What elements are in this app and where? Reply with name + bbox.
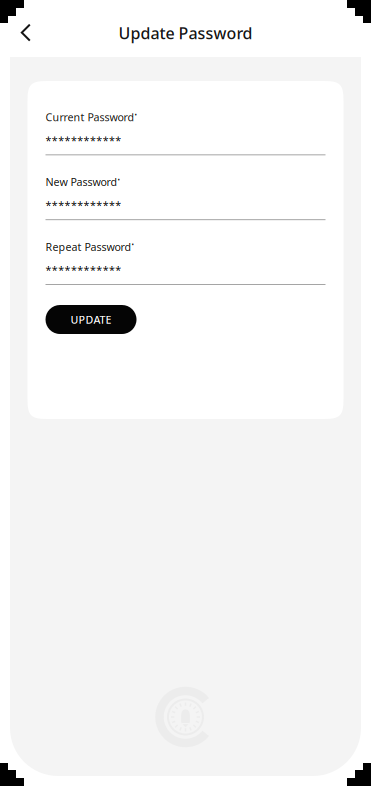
staticText: Current Password•	[45, 110, 137, 124]
button[interactable]: Back	[6, 13, 46, 53]
staticText: ************	[45, 263, 121, 277]
staticText: New Password•	[45, 175, 120, 189]
staticText: UPDATE	[70, 312, 111, 327]
button[interactable]: UPDATE	[45, 305, 136, 334]
staticText: ************	[45, 133, 121, 147]
staticText: Update Password	[118, 22, 252, 44]
staticText: Repeat Password•	[45, 240, 134, 254]
staticText: ************	[45, 198, 121, 212]
